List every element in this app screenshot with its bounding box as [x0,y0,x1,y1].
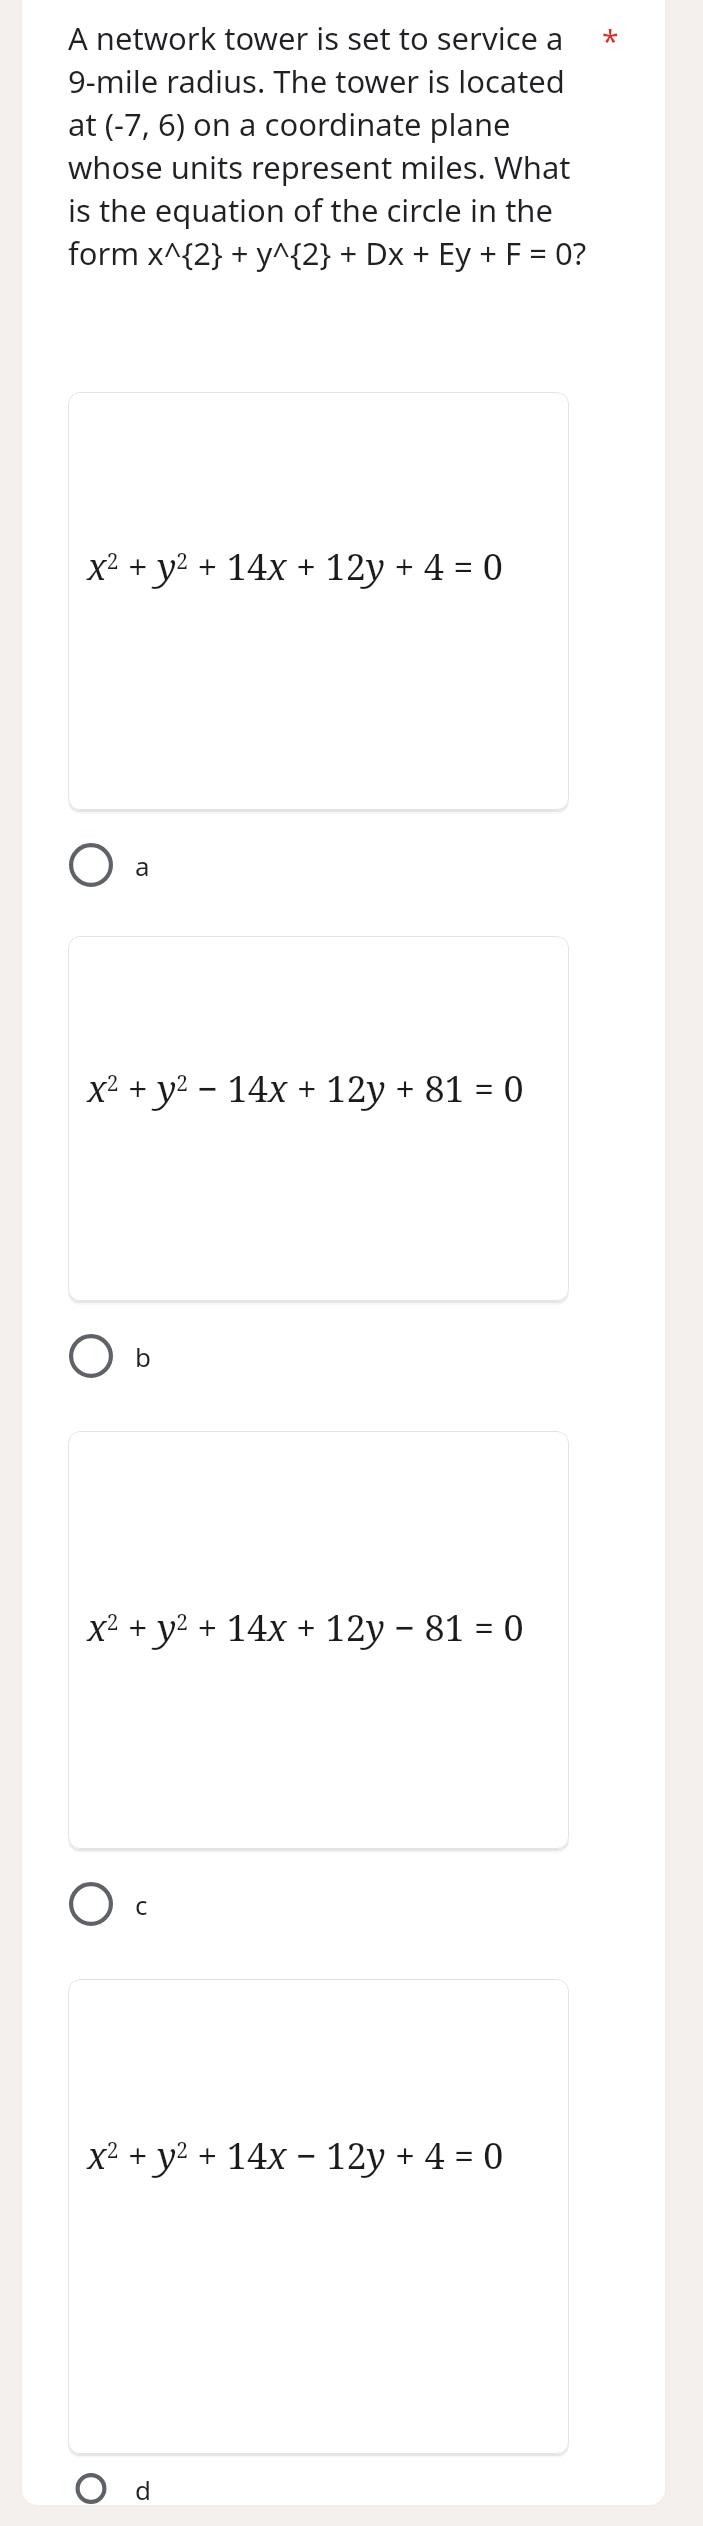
staticText: b [135,1339,151,1374]
button[interactable]: Option d [68,2472,625,2505]
button[interactable]: Option a [68,828,625,902]
staticText: x2 + y2 − 14x + 12y + 81 = 0 [87,1064,524,1113]
staticText: A network tower is set to service a 9-mi… [68,17,587,274]
button[interactable]: x2 + y2 + 14x − 12y + 4 = 0 [68,1979,569,2454]
staticText: x2 + y2 + 14x − 12y + 4 = 0 [87,2131,504,2180]
button[interactable]: Option b [68,1319,625,1393]
staticText: * [602,20,619,61]
button[interactable]: x2 + y2 + 14x + 12y + 4 = 0 [68,392,569,810]
button[interactable]: Option c [68,1867,625,1941]
staticText: a [135,848,150,883]
button[interactable]: x2 + y2 + 14x + 12y − 81 = 0 [68,1431,569,1849]
button[interactable]: x2 + y2 − 14x + 12y + 81 = 0 [68,936,569,1301]
staticText: x2 + y2 + 14x + 12y + 4 = 0 [87,542,503,591]
staticText: x2 + y2 + 14x + 12y − 81 = 0 [87,1603,524,1652]
staticText: c [135,1887,148,1922]
staticText: d [135,2472,151,2505]
